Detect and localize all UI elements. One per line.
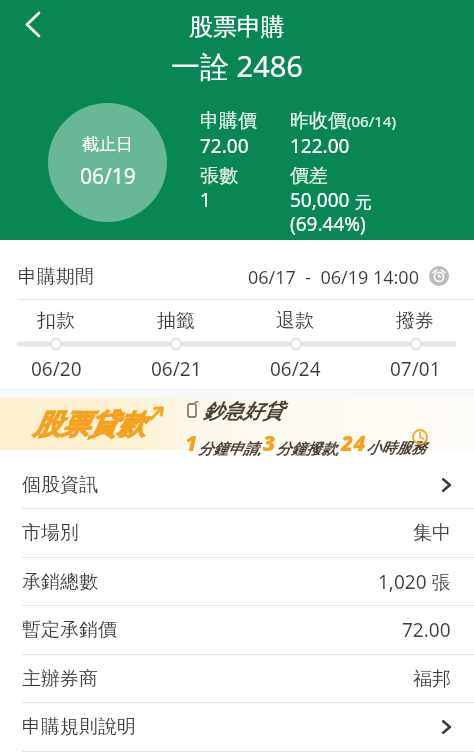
button[interactable]: 承銷總數 (0, 558, 474, 606)
staticText: 撥券 (396, 309, 434, 333)
staticText: 24 (341, 429, 366, 458)
staticText: 1 (200, 187, 211, 213)
staticText: 市場別 (22, 521, 79, 545)
staticText: (06/14) (347, 111, 396, 131)
staticText: 06/19 (80, 162, 136, 191)
staticText: 小時服務 (366, 439, 426, 458)
button[interactable]: 申購規則說明 (0, 703, 474, 752)
staticText: 06/20 (31, 356, 82, 382)
staticText: 06/17 - 06/19 14:00 (248, 265, 419, 290)
staticText: 申購規則說明 (22, 715, 136, 739)
staticText: 鈔急好貸 (203, 399, 283, 424)
staticText: 主辦券商 (22, 667, 98, 691)
staticText: 承銷總數 (22, 570, 98, 594)
button[interactable]: 申購期間 (0, 240, 474, 299)
staticText: 截止日 (82, 134, 133, 155)
button[interactable]: 股票貸款 (0, 398, 474, 450)
staticText: (69.44%) (290, 211, 366, 237)
button[interactable]: 市場別 (0, 509, 474, 558)
staticText: 06/21 (151, 356, 202, 382)
staticText: 申購價 (200, 109, 257, 133)
staticText: 06/24 (270, 356, 321, 382)
staticText: 福邦 (413, 667, 451, 691)
staticText: 07/01 (390, 356, 441, 382)
staticText: 退款 (276, 309, 314, 333)
staticText: 集中 (413, 521, 451, 545)
staticText: 一詮 2486 (171, 46, 303, 86)
staticText: 申購期間 (18, 265, 94, 289)
staticText: 72.00 (402, 617, 451, 643)
staticText: 122.00 (290, 133, 350, 159)
staticText: 72.00 (200, 133, 249, 159)
staticText: 股票申購 (189, 12, 285, 42)
staticText: 1 (185, 429, 198, 458)
staticText: 分鐘申請, (198, 438, 263, 458)
staticText: 抽籤 (157, 309, 195, 333)
staticText: 暫定承銷價 (22, 618, 117, 642)
button[interactable]: Back (11, 8, 45, 42)
staticText: 張數 (200, 164, 238, 188)
staticText: 股票貸款 (33, 407, 145, 442)
staticText: 價差 (290, 164, 328, 188)
staticText: 昨收價 (290, 109, 347, 133)
staticText: 元 (350, 190, 372, 213)
staticText: 50,000 (290, 187, 350, 213)
staticText: 個股資訊 (22, 473, 98, 497)
staticText: 分鐘撥款, (276, 438, 341, 458)
button[interactable]: 暫定承銷價 (0, 606, 474, 655)
staticText: 3 (263, 429, 276, 458)
staticText: 扣款 (37, 309, 75, 333)
button[interactable]: 主辦券商 (0, 655, 474, 703)
staticText: 1,020 張 (378, 569, 451, 595)
button[interactable]: 個股資訊 (0, 461, 474, 509)
